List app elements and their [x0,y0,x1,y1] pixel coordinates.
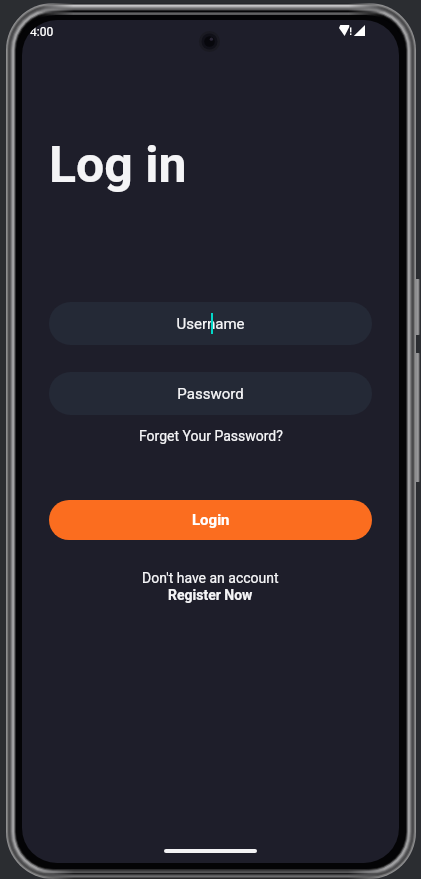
button[interactable]: Forget Your Password? [131,425,291,447]
staticText: Login [192,511,230,529]
staticText: Password [177,385,244,403]
button[interactable]: Password [49,372,372,415]
button[interactable]: Register Now [168,587,253,603]
button[interactable]: Login [49,500,372,540]
button[interactable]: Username [49,302,372,345]
staticText: Log in [49,136,187,195]
staticText: Username [176,315,245,333]
staticText: 4:00 [30,25,54,39]
staticText: Don't have an account [142,570,279,586]
